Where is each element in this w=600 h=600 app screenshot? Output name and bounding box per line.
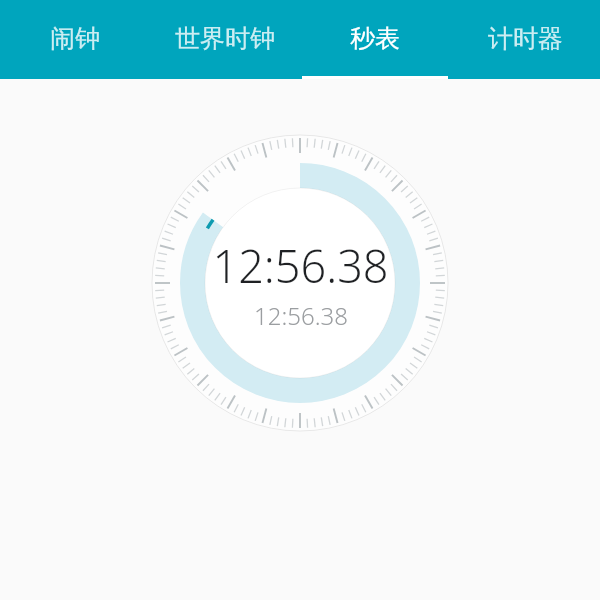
button[interactable]: 闹钟 [0,0,150,79]
button[interactable]: 世界时钟 [150,0,300,79]
staticText: 12:56.38 [254,299,348,332]
staticText: 闹钟 [50,23,100,54]
staticText: 计时器 [488,23,563,54]
staticText: 12:56.38 [212,235,389,296]
staticText: 秒表 [350,23,400,54]
staticText: 世界时钟 [175,23,275,54]
button[interactable]: 计时器 [450,0,600,79]
button[interactable]: 秒表 [300,0,450,79]
